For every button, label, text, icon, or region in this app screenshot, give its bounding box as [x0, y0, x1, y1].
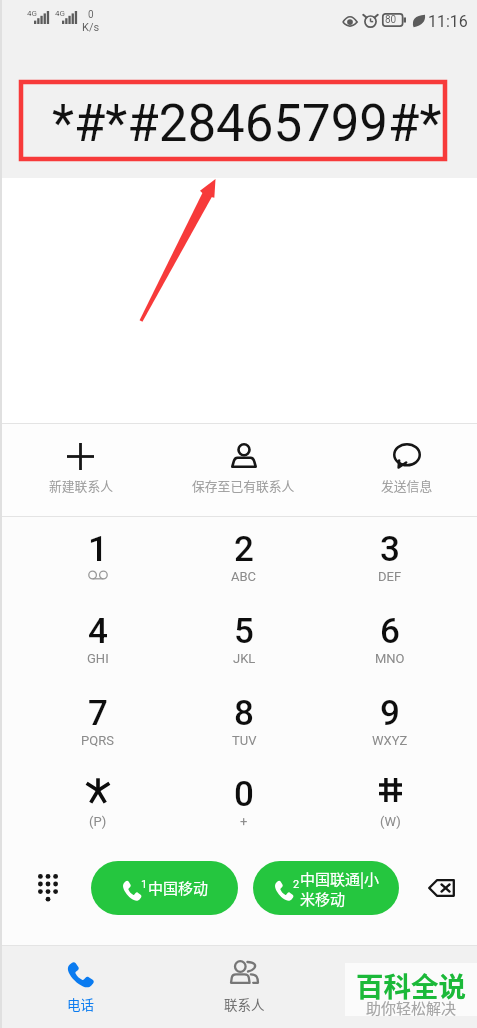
- button[interactable]: 保存至已有联系人: [162, 424, 325, 516]
- staticText: GHI: [87, 651, 109, 666]
- button[interactable]: 5: [171, 609, 317, 679]
- staticText: 4G: [27, 9, 37, 18]
- button[interactable]: 电话: [0, 946, 162, 1028]
- staticText: 新建联系人: [49, 476, 113, 495]
- staticText: 百科全说: [356, 965, 466, 1005]
- staticText: 80: [385, 14, 397, 26]
- button[interactable]: Delete: [418, 865, 464, 911]
- staticText: K/s: [82, 21, 100, 34]
- staticText: 助你轻松解决: [366, 997, 457, 1019]
- button[interactable]: 4: [24, 609, 171, 679]
- staticText: 11:16: [428, 12, 468, 31]
- staticText: 0: [234, 774, 254, 815]
- button[interactable]: 发送信息: [325, 424, 477, 516]
- staticText: 7: [88, 693, 108, 734]
- staticText: 9: [380, 693, 400, 734]
- button[interactable]: 8: [171, 691, 317, 761]
- staticText: (P): [89, 814, 107, 829]
- staticText: 中国联通|小 米移动: [300, 868, 380, 909]
- staticText: 联系人: [224, 994, 265, 1014]
- staticText: 1: [141, 878, 148, 891]
- staticText: 2: [293, 878, 300, 891]
- staticText: 中国移动: [148, 877, 209, 899]
- staticText: 1: [88, 529, 108, 570]
- button[interactable]: (W): [317, 772, 463, 842]
- staticText: +: [240, 814, 248, 829]
- staticText: 4: [88, 611, 108, 652]
- button[interactable]: (P): [24, 772, 171, 842]
- button[interactable]: 6: [317, 609, 463, 679]
- staticText: 电话: [67, 994, 94, 1014]
- staticText: WXYZ: [372, 733, 408, 748]
- staticText: MNO: [375, 651, 405, 666]
- button[interactable]: 1: [91, 861, 238, 915]
- staticText: 0: [88, 9, 94, 21]
- staticText: JKL: [233, 651, 256, 666]
- button[interactable]: 联系人: [162, 946, 326, 1028]
- staticText: *#*#28465799#*: [52, 94, 442, 154]
- button[interactable]: 2: [171, 527, 317, 597]
- button[interactable]: 新建联系人: [0, 424, 162, 516]
- staticText: 3: [380, 529, 400, 570]
- staticText: ABC: [231, 569, 257, 584]
- button[interactable]: Hide keypad: [24, 864, 72, 912]
- button[interactable]: 0: [171, 772, 317, 842]
- staticText: (W): [380, 814, 401, 829]
- button[interactable]: 3: [317, 527, 463, 597]
- button[interactable]: 2: [253, 861, 399, 915]
- staticText: 4G: [55, 9, 65, 18]
- staticText: DEF: [378, 569, 402, 584]
- staticText: 8: [234, 693, 254, 734]
- staticText: 6: [380, 611, 400, 652]
- staticText: PQRS: [81, 733, 114, 748]
- button[interactable]: 7: [24, 691, 171, 761]
- button[interactable]: 1: [24, 527, 171, 597]
- staticText: 2: [234, 529, 254, 570]
- staticText: TUV: [232, 733, 257, 748]
- staticText: 保存至已有联系人: [192, 476, 295, 495]
- button[interactable]: 9: [317, 691, 463, 761]
- staticText: 发送信息: [381, 476, 433, 495]
- staticText: 5: [234, 611, 254, 652]
